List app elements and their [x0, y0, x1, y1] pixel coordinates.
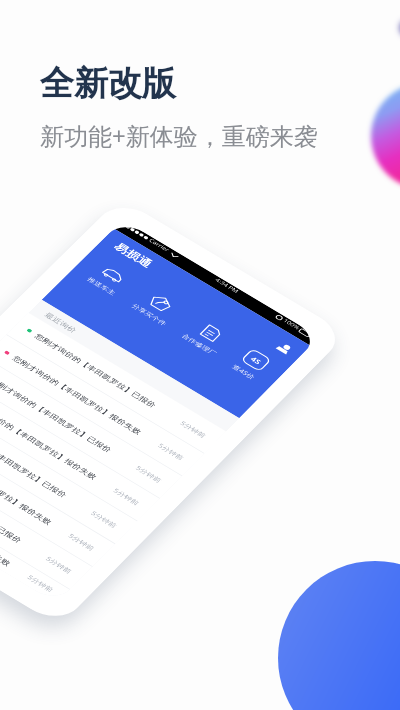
staticText: 您刚才询价的【丰田凯罗拉】报价失败 [0, 353, 154, 437]
staticText: 5分钟前 [154, 440, 188, 463]
staticText: 4S [248, 353, 265, 367]
staticText: 易损通 [108, 239, 157, 272]
button[interactable]: 合作修理厂 [175, 313, 238, 362]
staticText: 您刚才询价的【丰田凯罗拉】报价失败 [0, 442, 64, 527]
staticText: 最近询价 [41, 310, 81, 335]
button[interactable]: 分享买个件 [125, 283, 187, 332]
staticText: 5分钟前 [24, 572, 58, 595]
button[interactable]: 您刚才询价的【丰田凯罗拉】报价失败 [0, 331, 221, 480]
button[interactable]: 您刚才询价的【丰田凯罗拉】已报价 [0, 309, 243, 457]
staticText: 合作修理厂 [177, 331, 221, 358]
staticText: Carrier [145, 236, 172, 254]
staticText: 5分钟前 [110, 485, 144, 508]
button[interactable]: 您刚才询价的【丰田凯罗拉】已报价 [0, 397, 154, 548]
staticText: 您刚才询价的【丰田凯罗拉】已报价 [0, 420, 79, 500]
staticText: 分享买个件 [127, 301, 171, 328]
button[interactable]: 您刚才询价的【丰田凯罗拉】已报价 [0, 442, 109, 593]
staticText: 5分钟前 [132, 463, 166, 485]
staticText: 您刚才询价的【丰田凯罗拉】报价失败 [0, 483, 23, 568]
staticText: 5分钟前 [177, 418, 210, 440]
button[interactable]: 推送车主 [82, 256, 136, 301]
staticText: 查4S价 [229, 361, 259, 382]
staticText: 5分钟前 [87, 508, 121, 531]
button[interactable]: 您刚才询价的【丰田凯罗拉】报价失败 [0, 419, 132, 570]
staticText: 新功能+新体验，重磅来袭 [40, 119, 318, 152]
staticText: 您刚才询价的【丰田凯罗拉】报价失败 [0, 397, 109, 482]
staticText: 您刚才询价的【丰田凯罗拉】已报价 [23, 331, 168, 410]
staticText: 推送车主 [84, 275, 119, 297]
staticText: 全新改版 [40, 62, 176, 105]
button[interactable]: Profile [272, 339, 296, 358]
staticText: 100% [280, 316, 303, 332]
staticText: 您刚才询价的【丰田凯罗拉】已报价 [0, 465, 34, 545]
staticText: 5分钟前 [65, 531, 99, 553]
staticText: 您刚才询价的【丰田凯罗拉】已报价 [0, 375, 123, 455]
staticText: 4:34 PM [211, 276, 242, 296]
staticText: 5分钟前 [42, 553, 76, 576]
button[interactable]: 您刚才询价的【丰田凯罗拉】报价失败 [0, 375, 176, 525]
button[interactable]: 您刚才询价的【丰田凯罗拉】已报价 [0, 353, 199, 502]
button[interactable]: 您刚才询价的【丰田凯罗拉】报价失败 [0, 466, 87, 606]
button[interactable]: 4S [227, 343, 276, 385]
